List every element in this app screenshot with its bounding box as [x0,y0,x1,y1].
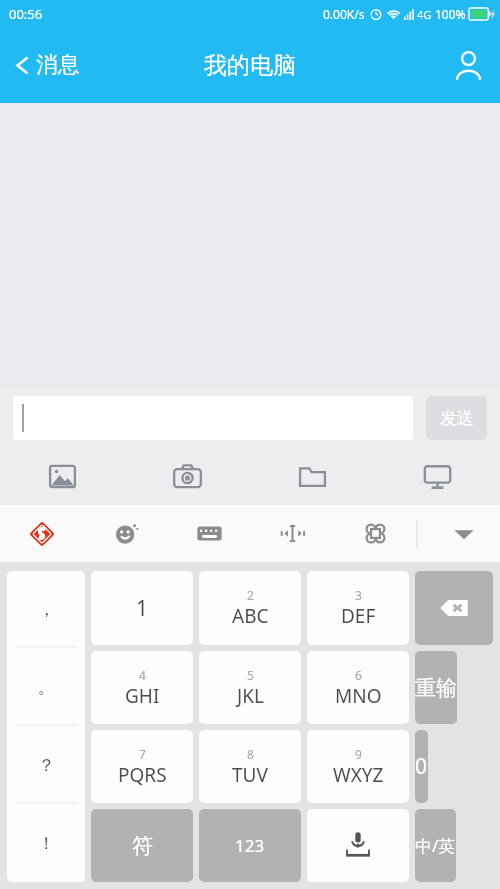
button[interactable]: 2 [199,571,301,645]
button[interactable]: My computer [375,448,500,505]
staticText: 00:56 [9,5,43,23]
button[interactable] [13,396,413,440]
button[interactable]: 4 [91,651,193,724]
staticText: ？ [38,755,55,776]
button[interactable]: Sogou input method [0,505,84,562]
button[interactable]: Hide keyboard [452,505,476,562]
button[interactable]: 6 [307,651,409,724]
staticText: WXYZ [333,762,384,788]
button[interactable]: Camera [125,448,250,505]
staticText: GHI [125,683,160,709]
staticText: 6 [355,667,362,683]
button[interactable]: ， [7,571,85,648]
button[interactable]: Files [250,448,375,505]
button[interactable]: Shortcuts [334,505,417,562]
button[interactable]: 8 [199,730,301,803]
staticText: MNO [335,683,382,709]
staticText: 2 [247,587,254,603]
button[interactable]: 3 [307,571,409,645]
staticText: JKL [237,683,264,709]
staticText: 4 [139,667,146,683]
staticText: 中/英 [415,834,456,857]
staticText: 重输 [415,675,457,701]
button[interactable]: 。 [7,648,85,726]
button[interactable]: 1 [91,571,193,645]
button[interactable]: Space and voice input [307,809,409,882]
staticText: 7 [139,746,146,762]
button[interactable]: Emoji [84,505,168,562]
staticText: 我的电脑 [204,51,296,80]
staticText: 4G [417,7,432,22]
button[interactable]: 123 [199,809,301,882]
staticText: TUV [232,762,268,788]
staticText: 0.00K/s [323,6,365,22]
staticText: 123 [235,834,265,857]
staticText: 8 [247,746,254,762]
staticText: 5 [247,667,254,683]
button[interactable]: 0 [415,730,428,803]
button[interactable]: ！ [7,804,85,882]
staticText: 符 [132,833,153,859]
button[interactable]: 9 [307,730,409,803]
button[interactable]: Keyboard layout [168,505,251,562]
button[interactable]: 重输 [415,651,457,724]
button[interactable]: 发送 [426,396,487,440]
button[interactable]: 7 [91,730,193,803]
staticText: 3 [355,587,362,603]
staticText: 9 [355,746,362,762]
staticText: ， [38,599,55,620]
staticText: ！ [38,833,55,854]
staticText: DEF [341,603,376,629]
button[interactable]: 消息 [0,27,96,103]
staticText: 发送 [440,408,474,429]
staticText: 0 [415,752,428,781]
button[interactable]: 中/英 [415,809,456,882]
button[interactable]: Profile [437,27,500,103]
button[interactable]: Photo [0,448,125,505]
staticText: 100% [435,6,466,22]
button[interactable]: Move cursor [251,505,334,562]
staticText: 。 [38,677,55,698]
button[interactable]: 5 [199,651,301,724]
staticText: ABC [232,603,269,629]
button[interactable]: Backspace [415,571,493,645]
staticText: PQRS [118,762,167,788]
button[interactable]: 符 [91,809,193,882]
button[interactable]: ？ [7,726,85,804]
staticText: 消息 [36,51,80,79]
staticText: 1 [136,594,149,623]
